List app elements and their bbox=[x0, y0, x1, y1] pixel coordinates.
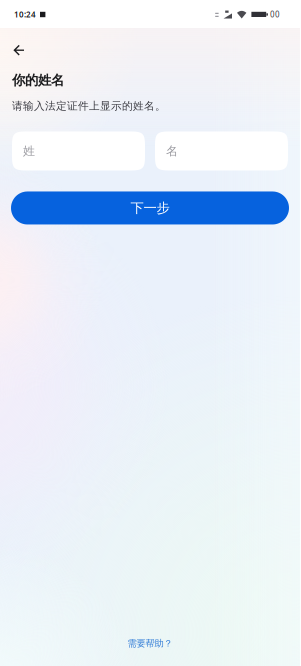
staticText: 姓 bbox=[23, 144, 35, 158]
staticText: 你的姓名 bbox=[12, 72, 64, 88]
staticText: 需要帮助？ bbox=[127, 637, 172, 649]
staticText: 请输入法定证件上显示的姓名。 bbox=[12, 99, 166, 112]
staticText: 名 bbox=[166, 144, 178, 158]
staticText: 10:24 bbox=[14, 9, 36, 20]
button[interactable]: 名 bbox=[155, 131, 288, 170]
button[interactable]: Back bbox=[6, 29, 32, 71]
button[interactable]: 姓 bbox=[12, 131, 145, 170]
staticText: 00 bbox=[270, 9, 280, 20]
button[interactable]: 需要帮助？ bbox=[117, 632, 182, 654]
button[interactable]: 下一步 bbox=[11, 191, 289, 224]
staticText: 下一步 bbox=[130, 200, 169, 216]
